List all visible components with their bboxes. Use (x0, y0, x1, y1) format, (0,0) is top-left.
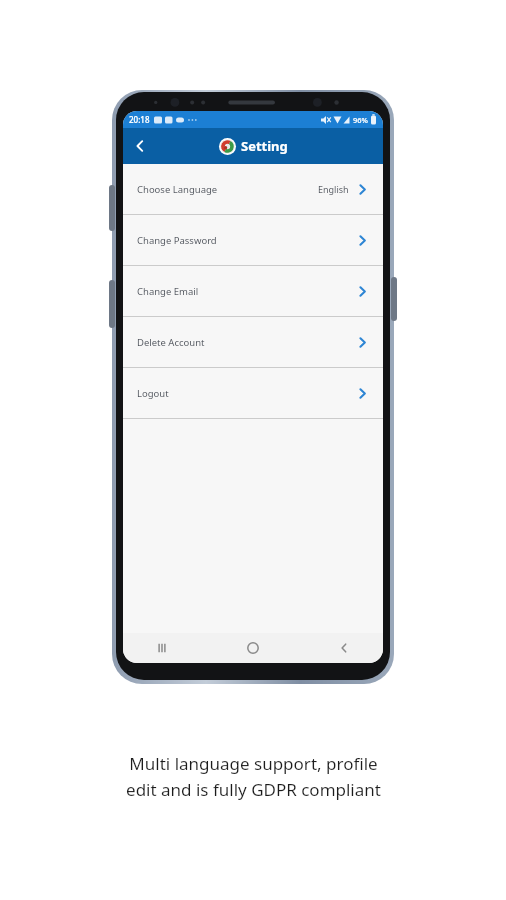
button[interactable]: Back (123, 129, 157, 163)
staticText: Choose Language (137, 183, 218, 196)
button[interactable]: Back (331, 635, 357, 661)
staticText: Delete Account (137, 336, 205, 349)
staticText: Logout (137, 387, 169, 400)
staticText: Change Email (137, 285, 199, 298)
button[interactable]: Recent apps (149, 635, 175, 661)
button[interactable]: Logout (123, 368, 383, 419)
staticText: 20:18 (129, 114, 150, 125)
button[interactable]: Home (240, 635, 266, 661)
staticText: English (318, 183, 349, 195)
staticText: 96% (353, 115, 368, 125)
staticText: Setting (241, 137, 288, 155)
staticText: Change Password (137, 234, 217, 247)
button[interactable]: Choose Language (123, 164, 383, 215)
button[interactable]: Change Password (123, 215, 383, 266)
button[interactable]: Delete Account (123, 317, 383, 368)
button[interactable]: Change Email (123, 266, 383, 317)
staticText: Multi language support, profile edit and… (126, 752, 381, 801)
